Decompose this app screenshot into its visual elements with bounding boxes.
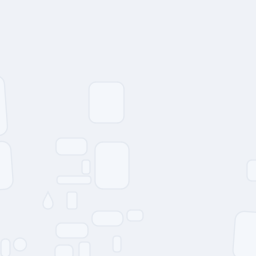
button[interactable]: Featured [89, 82, 124, 123]
button[interactable]: Item [113, 236, 121, 252]
button[interactable]: Drop [43, 192, 53, 209]
button[interactable]: Item [82, 160, 90, 174]
button[interactable]: Tag [56, 223, 88, 238]
button[interactable]: Item [247, 160, 256, 181]
button[interactable]: Item [1, 239, 10, 256]
button[interactable]: Item [67, 192, 77, 209]
button[interactable]: Tag [55, 245, 73, 256]
button[interactable]: Detail [95, 142, 129, 189]
button[interactable]: Item [12, 238, 28, 251]
button[interactable]: Card [0, 142, 12, 190]
button[interactable]: Caption [57, 176, 91, 184]
button[interactable]: Card [0, 76, 6, 136]
button[interactable]: Item [79, 242, 90, 256]
button[interactable]: Action [92, 211, 123, 226]
button[interactable]: Badge [127, 210, 143, 221]
button[interactable]: Tag [56, 138, 87, 155]
